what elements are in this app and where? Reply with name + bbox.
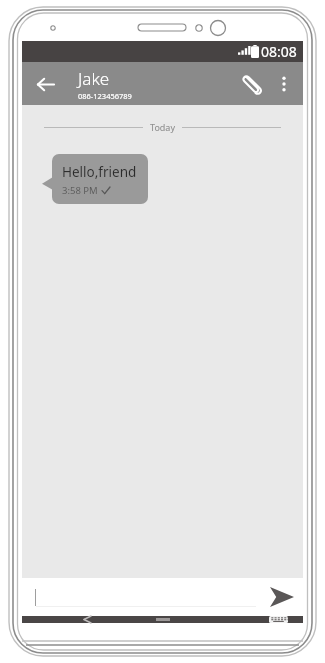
button[interactable]: Keyboard (266, 616, 290, 623)
staticText: Hello,friend (62, 163, 137, 181)
button[interactable]: Attach file (235, 67, 269, 101)
button[interactable]: Jake (78, 67, 136, 101)
button[interactable]: More options (269, 69, 299, 99)
staticText: 086-123456789 (78, 91, 132, 101)
staticText: 08:08 (261, 42, 297, 61)
staticText: 3:58 PM (62, 184, 98, 197)
button[interactable]: Send (266, 581, 298, 613)
button[interactable]: Back (31, 70, 59, 98)
staticText: Today (150, 121, 175, 133)
button[interactable]: Hello,friend (52, 154, 148, 204)
button[interactable]: Home (148, 616, 178, 623)
staticText: Jake (78, 67, 110, 90)
button[interactable]: Back (74, 616, 100, 623)
